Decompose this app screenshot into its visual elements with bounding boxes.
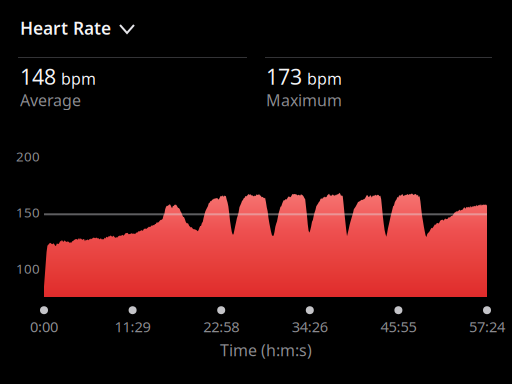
staticText: bpm [307, 68, 342, 89]
staticText: 100 [16, 260, 40, 277]
staticText: bpm [61, 68, 96, 89]
staticText: 0:00 [30, 317, 58, 336]
staticText: 11:29 [115, 317, 151, 336]
staticText: 148 [20, 62, 56, 91]
button[interactable]: Heart Rate [20, 11, 220, 45]
staticText: 173 [266, 62, 302, 91]
staticText: Maximum [266, 89, 342, 111]
staticText: Average [20, 89, 81, 111]
staticText: 34:26 [292, 317, 328, 336]
staticText: 22:58 [203, 317, 239, 336]
staticText: Time (h:m:s) [220, 339, 312, 361]
staticText: 150 [16, 203, 40, 221]
staticText: 45:55 [380, 317, 416, 336]
staticText: Heart Rate [20, 16, 111, 39]
staticText: 200 [16, 147, 40, 165]
staticText: 57:24 [469, 317, 505, 336]
